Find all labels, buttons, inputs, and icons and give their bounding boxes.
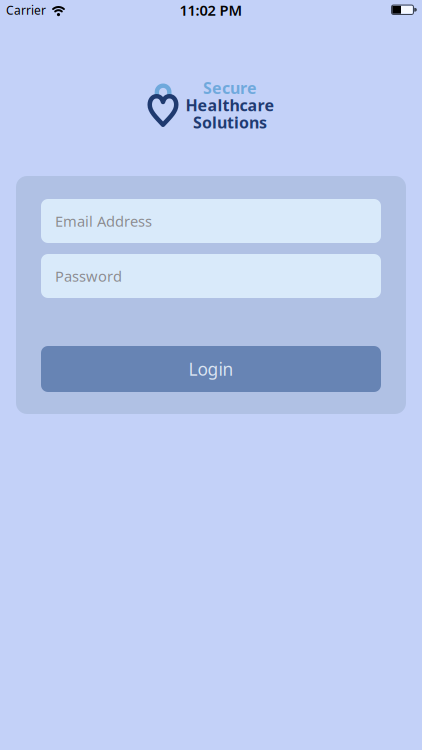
- staticText: Solutions: [193, 112, 267, 133]
- button[interactable]: Email Address: [41, 199, 381, 243]
- staticText: Healthcare: [185, 94, 274, 116]
- staticText: Password: [55, 266, 122, 286]
- staticText: Carrier: [6, 2, 46, 18]
- staticText: 11:02 PM: [179, 0, 242, 20]
- staticText: Login: [188, 357, 233, 380]
- staticText: Secure: [203, 77, 257, 98]
- button[interactable]: Login: [41, 346, 381, 392]
- staticText: Email Address: [55, 211, 152, 231]
- button[interactable]: Password: [41, 254, 381, 298]
